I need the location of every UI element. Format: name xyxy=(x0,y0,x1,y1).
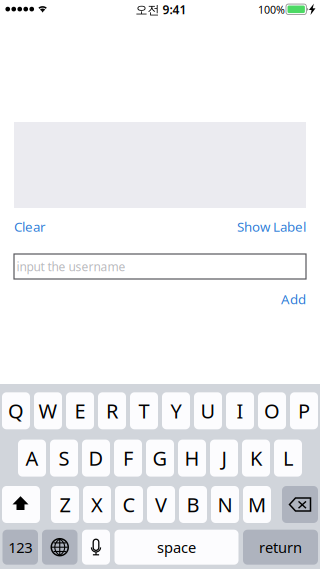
button[interactable]: W xyxy=(34,392,62,429)
staticText: 100% xyxy=(258,2,285,17)
button[interactable]: O xyxy=(258,392,286,429)
button[interactable]: J xyxy=(210,440,238,477)
staticText: O xyxy=(264,397,280,424)
button[interactable]: T xyxy=(130,392,158,429)
staticText: I xyxy=(236,397,243,424)
staticText: B xyxy=(186,491,199,518)
staticText: S xyxy=(58,445,69,471)
button[interactable]: Delete xyxy=(282,486,318,523)
staticText: A xyxy=(25,445,38,471)
staticText: W xyxy=(38,397,57,424)
button[interactable]: E xyxy=(66,392,94,429)
staticText: K xyxy=(250,445,262,471)
staticText: 오전 9:41 xyxy=(135,1,186,17)
staticText: Clear xyxy=(14,218,46,235)
staticText: input the username xyxy=(16,258,125,274)
button[interactable]: V xyxy=(147,486,175,523)
button[interactable]: P xyxy=(290,392,318,429)
button[interactable]: B xyxy=(179,486,207,523)
button[interactable]: A xyxy=(18,440,46,477)
button[interactable]: 123 xyxy=(2,530,38,565)
staticText: J xyxy=(221,445,226,471)
staticText: X xyxy=(91,491,103,518)
button[interactable]: space xyxy=(114,530,238,565)
button[interactable]: N xyxy=(211,486,239,523)
staticText: P xyxy=(298,397,310,424)
button[interactable]: Shift xyxy=(2,486,40,523)
staticText: T xyxy=(138,397,149,424)
staticText: H xyxy=(184,445,199,471)
staticText: Add xyxy=(281,290,306,308)
button[interactable]: return xyxy=(243,530,318,565)
staticText: Y xyxy=(170,397,181,424)
staticText: space xyxy=(157,537,196,557)
staticText: N xyxy=(217,491,232,518)
staticText: return xyxy=(259,537,302,557)
button[interactable]: S xyxy=(50,440,78,477)
button[interactable]: X xyxy=(83,486,111,523)
button[interactable]: I xyxy=(226,392,254,429)
button[interactable]: Show Label xyxy=(237,218,306,235)
staticText: R xyxy=(106,397,118,424)
button[interactable]: M xyxy=(243,486,271,523)
staticText: M xyxy=(248,491,266,518)
staticText: Z xyxy=(59,491,70,518)
button[interactable]: Add xyxy=(281,290,306,308)
staticText: D xyxy=(88,445,103,471)
staticText: 123 xyxy=(8,537,32,557)
button[interactable]: Y xyxy=(162,392,190,429)
button[interactable]: F xyxy=(114,440,142,477)
staticText: L xyxy=(283,445,293,471)
button[interactable]: Z xyxy=(51,486,79,523)
staticText: F xyxy=(123,445,133,471)
button[interactable]: G xyxy=(146,440,174,477)
staticText: G xyxy=(152,445,167,471)
button[interactable]: U xyxy=(194,392,222,429)
staticText: V xyxy=(155,491,167,518)
staticText: E xyxy=(74,397,85,424)
staticText: Show Label xyxy=(237,218,306,235)
staticText: Q xyxy=(8,397,24,424)
button[interactable]: Clear xyxy=(14,218,46,235)
staticText: U xyxy=(200,397,215,424)
button[interactable]: C xyxy=(115,486,143,523)
button[interactable]: L xyxy=(274,440,302,477)
button[interactable]: K xyxy=(242,440,270,477)
button[interactable]: H xyxy=(178,440,206,477)
button[interactable]: D xyxy=(82,440,110,477)
button[interactable]: Dictate xyxy=(82,530,110,565)
button[interactable]: Next keyboard xyxy=(42,530,77,565)
button[interactable]: R xyxy=(98,392,126,429)
staticText: C xyxy=(122,491,135,518)
button[interactable]: Q xyxy=(2,392,30,429)
